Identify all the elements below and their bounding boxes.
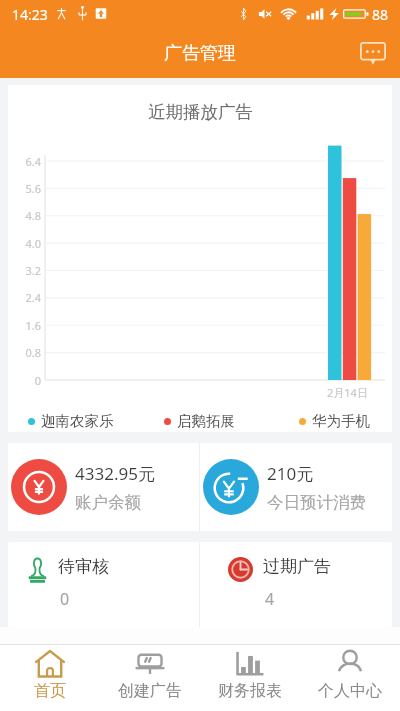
staticText: 5.6 (8, 181, 41, 196)
staticText: 首页 (34, 681, 66, 701)
staticText: 过期广告 (263, 556, 331, 577)
staticText: 近期播放广告 (148, 101, 253, 123)
staticText: 0 (8, 373, 41, 388)
staticText: 4.8 (8, 208, 41, 223)
staticText: 财务报表 (218, 681, 282, 701)
staticText: 待审核 (58, 556, 109, 577)
staticText: 账户余额 (75, 492, 141, 513)
staticText: 今日预计消费 (267, 492, 366, 513)
staticText: 个人中心 (318, 681, 382, 701)
button[interactable]: 创建广告 (100, 645, 200, 711)
staticText: 210元 (267, 462, 314, 485)
staticText: 6.4 (8, 154, 41, 169)
staticText: 华为手机 (312, 412, 370, 430)
button[interactable]: 财务报表 (200, 645, 300, 711)
button[interactable]: 210元 (200, 443, 392, 531)
staticText: 4 (265, 588, 275, 610)
button[interactable]: Messages (356, 36, 390, 70)
staticText: 3.2 (8, 263, 41, 278)
button[interactable]: 个人中心 (300, 645, 400, 711)
staticText: 创建广告 (118, 681, 182, 701)
staticText: 启鹅拓展 (177, 412, 235, 430)
staticText: 1.6 (8, 318, 41, 333)
staticText: 迦南农家乐 (41, 412, 114, 430)
staticText: 2.4 (8, 290, 41, 305)
staticText: 88 (372, 5, 389, 24)
button[interactable]: 首页 (0, 645, 100, 711)
staticText: 2月14日 (327, 385, 368, 400)
button[interactable]: 过期广告 (200, 542, 392, 627)
staticText: 广告管理 (164, 42, 236, 65)
button[interactable]: 4332.95元 (8, 443, 199, 531)
staticText: 4.0 (8, 236, 41, 251)
staticText: 14:23 (12, 5, 48, 24)
button[interactable]: 待审核 (8, 542, 199, 627)
staticText: 4332.95元 (75, 462, 155, 485)
staticText: 0.8 (8, 345, 41, 360)
staticText: 0 (60, 588, 70, 610)
